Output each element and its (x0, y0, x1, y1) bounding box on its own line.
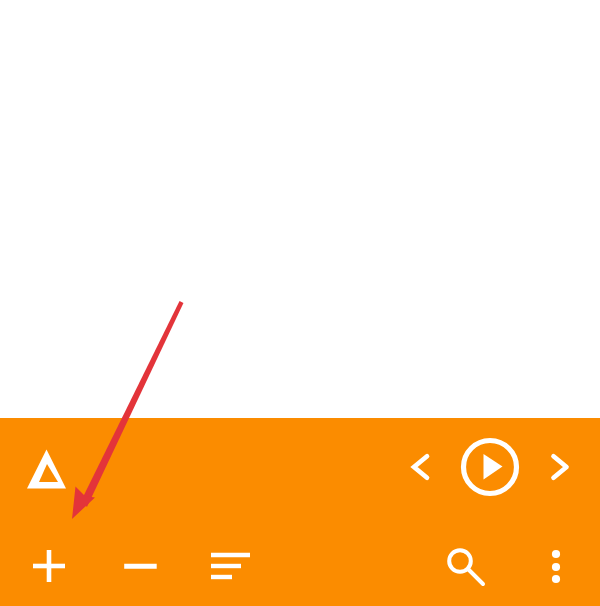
button[interactable]: Previous track (402, 448, 440, 486)
button[interactable]: Sort (205, 543, 253, 591)
button[interactable]: Remove (116, 542, 164, 590)
button[interactable]: More options (532, 538, 580, 586)
button[interactable]: Add (25, 542, 73, 590)
button[interactable]: AIMP logo (24, 446, 70, 492)
button[interactable]: Next track (541, 448, 579, 486)
button[interactable]: Search (438, 539, 490, 591)
button[interactable]: Play (456, 433, 524, 501)
